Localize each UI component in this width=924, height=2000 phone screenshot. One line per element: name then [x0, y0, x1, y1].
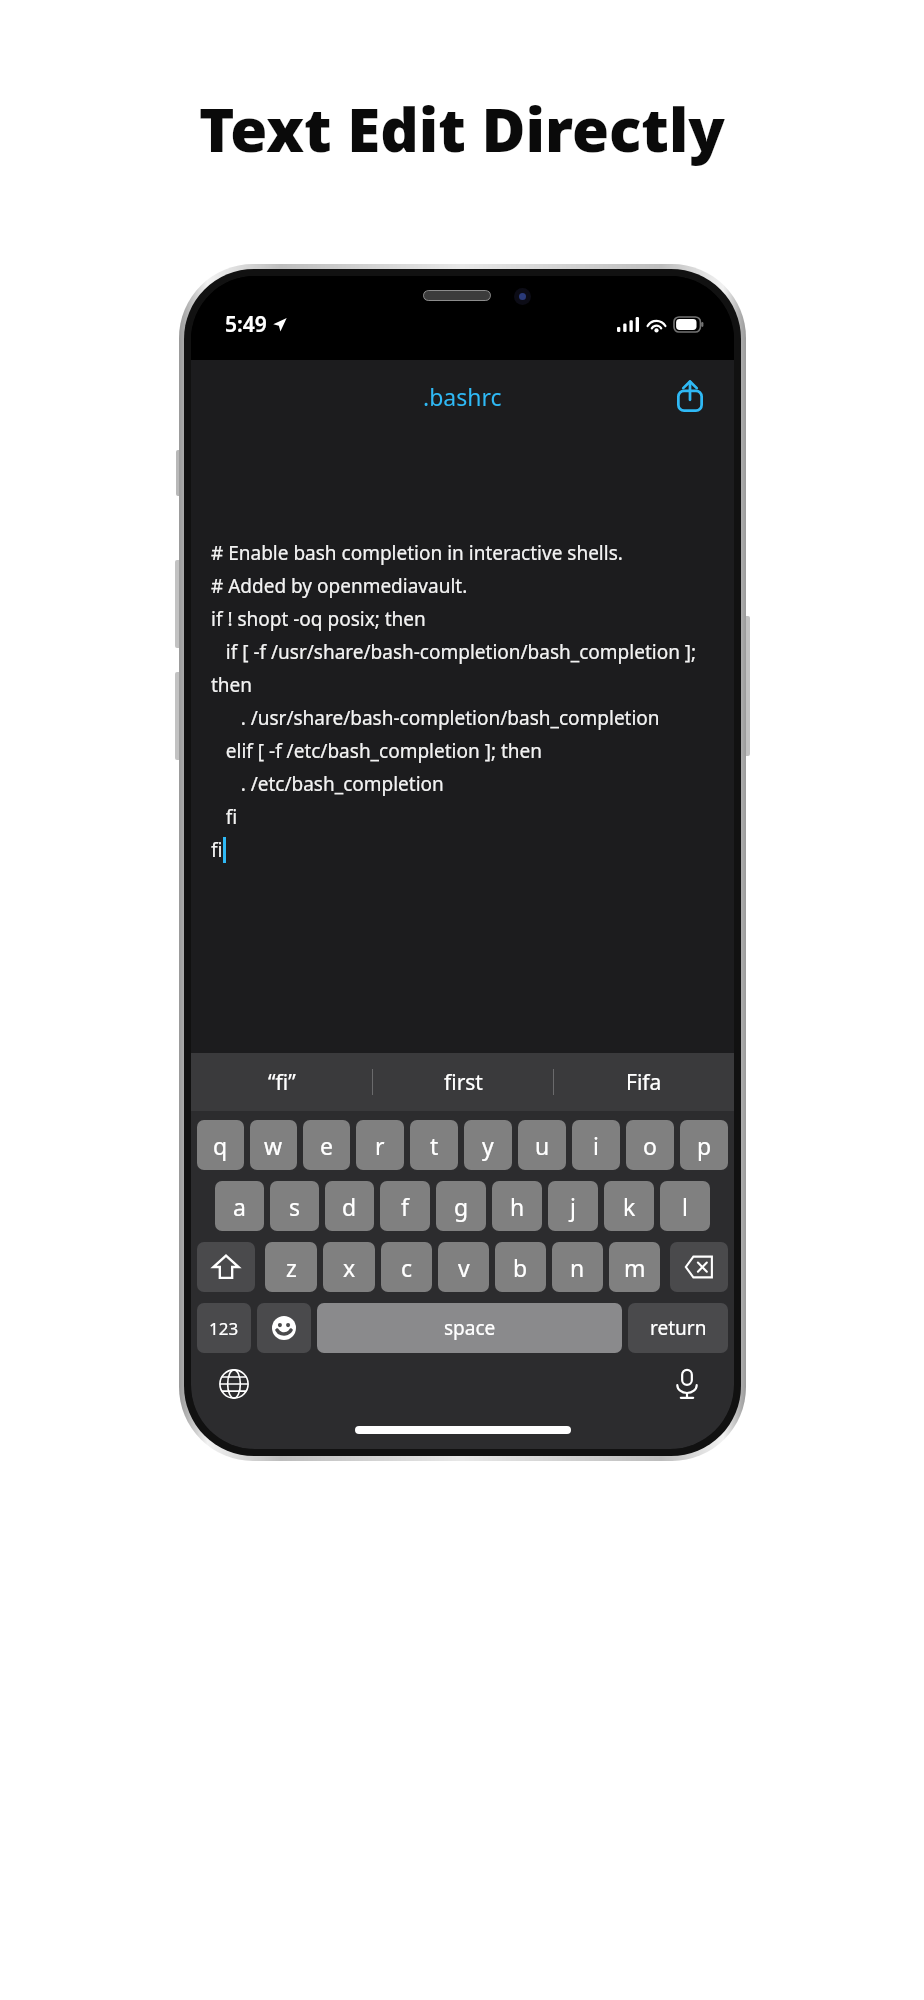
staticText: 123: [209, 1317, 239, 1340]
staticText: # Enable bash completion in interactive …: [211, 540, 623, 566]
staticText: b: [513, 1252, 528, 1283]
staticText: e: [320, 1130, 333, 1161]
button[interactable]: Backspace: [670, 1242, 728, 1292]
button[interactable]: Emoji: [257, 1303, 311, 1353]
button[interactable]: u: [518, 1120, 566, 1170]
button[interactable]: k: [604, 1181, 654, 1231]
button[interactable]: x: [323, 1242, 375, 1292]
button[interactable]: Fifa: [554, 1053, 734, 1111]
button[interactable]: g: [436, 1181, 486, 1231]
button[interactable]: p: [680, 1120, 728, 1170]
staticText: if [ -f /usr/share/bash-completion/bash_…: [211, 639, 697, 665]
staticText: d: [342, 1191, 357, 1222]
staticText: Text Edit Directly: [199, 88, 725, 170]
staticText: y: [482, 1130, 494, 1161]
staticText: .bashrc: [423, 381, 502, 412]
staticText: elif [ -f /etc/bash_completion ]; then: [211, 738, 543, 764]
staticText: fi: [211, 837, 223, 863]
button[interactable]: n: [552, 1242, 603, 1292]
button[interactable]: v: [438, 1242, 489, 1292]
button[interactable]: Change keyboard: [213, 1363, 255, 1405]
staticText: space: [444, 1315, 496, 1341]
staticText: 5:49: [225, 310, 267, 339]
staticText: t: [430, 1130, 439, 1161]
staticText: c: [401, 1252, 413, 1283]
staticText: p: [697, 1130, 712, 1161]
button[interactable]: d: [325, 1181, 374, 1231]
staticText: a: [233, 1191, 246, 1222]
staticText: if ! shopt -oq posix; then: [211, 606, 426, 632]
button[interactable]: w: [250, 1120, 297, 1170]
button[interactable]: j: [548, 1181, 598, 1231]
staticText: k: [623, 1191, 636, 1222]
staticText: w: [264, 1130, 283, 1161]
button[interactable]: c: [381, 1242, 432, 1292]
staticText: z: [286, 1252, 297, 1283]
button[interactable]: i: [572, 1120, 620, 1170]
staticText: r: [375, 1130, 385, 1161]
staticText: f: [401, 1191, 409, 1222]
staticText: then: [211, 672, 253, 698]
staticText: q: [213, 1130, 228, 1161]
staticText: o: [643, 1130, 657, 1161]
button[interactable]: “fi”: [191, 1053, 372, 1111]
staticText: s: [289, 1191, 301, 1222]
staticText: fi: [211, 804, 238, 830]
staticText: “fi”: [268, 1068, 296, 1097]
staticText: h: [510, 1191, 525, 1222]
button[interactable]: h: [492, 1181, 542, 1231]
button[interactable]: space: [317, 1303, 622, 1353]
button[interactable]: z: [265, 1242, 317, 1292]
button[interactable]: y: [464, 1120, 512, 1170]
button[interactable]: .bashrc: [423, 381, 502, 412]
staticText: . /usr/share/bash-completion/bash_comple…: [211, 705, 660, 731]
staticText: i: [593, 1130, 599, 1161]
staticText: m: [624, 1252, 646, 1283]
button[interactable]: l: [660, 1181, 710, 1231]
button[interactable]: return: [628, 1303, 728, 1353]
button[interactable]: Dictation: [666, 1363, 708, 1405]
button[interactable]: o: [626, 1120, 674, 1170]
staticText: # Added by openmediavault.: [211, 573, 468, 599]
button[interactable]: t: [410, 1120, 458, 1170]
button[interactable]: m: [609, 1242, 660, 1292]
button[interactable]: Share: [668, 374, 712, 418]
staticText: first: [444, 1068, 483, 1097]
button[interactable]: first: [373, 1053, 553, 1111]
button[interactable]: s: [270, 1181, 319, 1231]
staticText: v: [458, 1252, 470, 1283]
button[interactable]: q: [197, 1120, 244, 1170]
staticText: l: [682, 1191, 688, 1222]
staticText: Fifa: [626, 1068, 662, 1097]
button[interactable]: b: [495, 1242, 546, 1292]
staticText: j: [570, 1191, 576, 1222]
button[interactable]: f: [380, 1181, 430, 1231]
staticText: return: [650, 1315, 707, 1341]
button[interactable]: e: [303, 1120, 350, 1170]
staticText: u: [535, 1130, 550, 1161]
staticText: n: [570, 1252, 585, 1283]
staticText: g: [454, 1191, 469, 1222]
button[interactable]: Shift: [197, 1242, 255, 1292]
staticText: x: [343, 1252, 356, 1283]
button[interactable]: 123: [197, 1303, 251, 1353]
button[interactable]: r: [356, 1120, 404, 1170]
button[interactable]: a: [215, 1181, 264, 1231]
staticText: . /etc/bash_completion: [211, 771, 444, 797]
